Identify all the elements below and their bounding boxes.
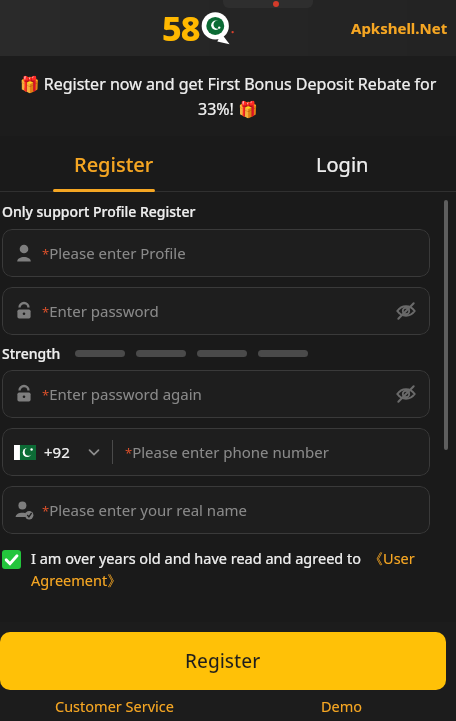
staticText: *Enter password — [42, 301, 159, 321]
button[interactable]: *Please enter phone number — [113, 428, 430, 476]
staticText: Register — [185, 648, 261, 674]
button[interactable]: *Enter password — [2, 287, 430, 335]
staticText: Strength — [2, 344, 61, 362]
staticText: 🎁 Register now and get First Bonus Depos… — [14, 73, 442, 119]
button[interactable]: Apkshell.Net — [351, 18, 448, 38]
staticText: *Please enter your real name — [42, 500, 248, 520]
button[interactable]: *Please enter Profile — [2, 229, 430, 277]
button[interactable]: I am over years old and have read and ag… — [31, 548, 430, 591]
staticText: 58 — [162, 5, 200, 51]
staticText: +92 — [44, 442, 70, 462]
button[interactable]: 58Q home — [162, 5, 235, 51]
staticText: Customer Service — [55, 696, 174, 716]
staticText: *Please enter phone number — [125, 442, 329, 462]
button[interactable]: *Enter password again — [2, 370, 430, 418]
staticText: Register — [74, 151, 154, 178]
button[interactable]: Login — [228, 136, 456, 192]
button[interactable]: *Please enter your real name — [2, 486, 430, 534]
button[interactable]: Toggle password visibility — [394, 299, 418, 323]
button[interactable]: Toggle password visibility — [394, 382, 418, 406]
button[interactable]: Register — [0, 136, 228, 192]
button[interactable]: 🎁 Register now and get First Bonus Depos… — [0, 56, 456, 136]
staticText: Apkshell.Net — [351, 18, 448, 38]
button[interactable]: Customer Service — [0, 690, 228, 721]
staticText: Login — [316, 151, 369, 178]
button[interactable]: Select country code — [14, 428, 102, 476]
staticText: Only support Profile Register — [2, 202, 196, 221]
button[interactable]: Demo — [228, 690, 456, 721]
staticText: *Please enter Profile — [42, 243, 186, 263]
staticText: Demo — [321, 696, 363, 716]
staticText: *Enter password again — [42, 384, 202, 404]
button[interactable]: Agree to user agreement — [2, 550, 21, 569]
button[interactable]: Register — [0, 632, 446, 690]
